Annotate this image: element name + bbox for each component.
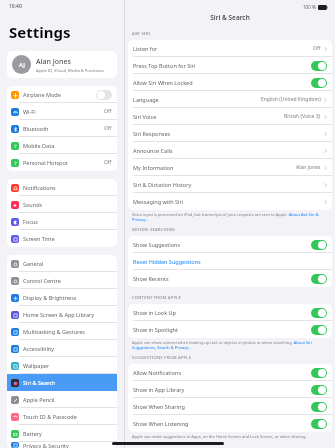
button[interactable]: Show in Spotlight xyxy=(128,321,332,338)
button[interactable]: On xyxy=(311,402,327,412)
button[interactable]: Wi-Fi xyxy=(7,103,117,120)
button[interactable]: On xyxy=(311,78,327,88)
staticText: Bluetooth xyxy=(23,125,49,132)
staticText: Listen for xyxy=(133,45,158,52)
button[interactable]: Mobile Data xyxy=(7,137,117,154)
button[interactable]: My Information xyxy=(128,159,332,176)
staticText: Off xyxy=(104,108,112,115)
staticText: Siri Responses xyxy=(133,130,171,137)
button[interactable]: Wallpaper xyxy=(7,357,117,374)
staticText: Alan Jones xyxy=(296,164,321,171)
button[interactable]: Press Top Button for Siri xyxy=(128,57,332,74)
staticText: Show When Listening xyxy=(133,420,189,427)
button[interactable]: Show When Sharing xyxy=(128,398,332,415)
staticText: Apple ID, iCloud, Media & Purchases xyxy=(36,68,104,73)
button[interactable]: Airplane Mode xyxy=(7,86,117,103)
staticText: Show Suggestions xyxy=(133,241,181,248)
staticText: AJ xyxy=(19,61,25,69)
staticText: Notifications xyxy=(23,184,56,191)
button[interactable]: Announce Calls xyxy=(128,142,332,159)
button[interactable]: Messaging with Siri xyxy=(128,193,332,210)
button[interactable]: Reset Hidden Suggestions xyxy=(128,253,332,270)
staticText: Sounds xyxy=(23,201,43,208)
button[interactable]: Siri & Search xyxy=(7,374,117,391)
staticText: Settings xyxy=(9,22,71,42)
staticText: 100 % xyxy=(303,4,316,10)
button[interactable]: Sounds xyxy=(7,196,117,213)
button[interactable]: Control Centre xyxy=(7,272,117,289)
staticText: Reset Hidden Suggestions xyxy=(133,258,201,265)
button[interactable]: Display & Brightness xyxy=(7,289,117,306)
staticText: Voice input is processed on iPad, but tr… xyxy=(132,212,328,222)
staticText: Language xyxy=(133,96,159,103)
staticText: Wi-Fi xyxy=(23,108,36,115)
staticText: My Information xyxy=(133,164,174,171)
button[interactable]: Allow Notifications xyxy=(128,364,332,381)
button[interactable]: On xyxy=(311,274,327,284)
button[interactable]: Allow Siri When Locked xyxy=(128,74,332,91)
button[interactable]: Off xyxy=(96,90,112,100)
button[interactable]: Touch ID & Passcode xyxy=(7,408,117,425)
button[interactable]: Siri Voice xyxy=(128,108,332,125)
staticText: Mobile Data xyxy=(23,142,55,149)
staticText: Home Screen & App Library xyxy=(23,311,95,318)
staticText: Show in App Library xyxy=(133,386,185,393)
button[interactable]: On xyxy=(311,419,327,429)
staticText: SUGGESTIONS FROM APPLE xyxy=(132,355,192,361)
button[interactable]: On xyxy=(311,308,327,318)
button[interactable]: Battery xyxy=(7,425,117,442)
button[interactable]: Show When Listening xyxy=(128,415,332,432)
button[interactable]: Multitasking & Gestures xyxy=(7,323,117,340)
staticText: Display & Brightness xyxy=(23,294,77,301)
button[interactable]: Show in App Library xyxy=(128,381,332,398)
staticText: Wallpaper xyxy=(23,362,50,369)
button[interactable]: Language xyxy=(128,91,332,108)
button[interactable]: Listen for xyxy=(128,40,332,57)
button[interactable]: Siri & Dictation History xyxy=(128,176,332,193)
button[interactable]: Privacy & Security xyxy=(7,442,117,448)
staticText: Allow Notifications xyxy=(133,369,182,376)
button[interactable]: Bluetooth xyxy=(7,120,117,137)
staticText: Off xyxy=(104,125,112,132)
staticText: BEFORE SEARCHING xyxy=(132,227,176,233)
staticText: Siri & Search xyxy=(23,379,56,386)
staticText: ASK SIRI xyxy=(132,31,150,37)
staticText: Apple can make suggestions in Apps, on t… xyxy=(132,434,307,439)
button[interactable]: Show in Look Up xyxy=(128,304,332,321)
button[interactable]: Personal Hotspot xyxy=(7,154,117,171)
staticText: Airplane Mode xyxy=(23,91,61,98)
button[interactable]: On xyxy=(311,61,327,71)
staticText: General xyxy=(23,260,44,267)
staticText: Personal Hotspot xyxy=(23,159,68,166)
button[interactable]: On xyxy=(311,325,327,335)
button[interactable]: Show Suggestions xyxy=(128,236,332,253)
staticText: Alan Jones xyxy=(36,57,71,67)
button[interactable]: On xyxy=(311,240,327,250)
button[interactable]: Focus xyxy=(7,213,117,230)
button[interactable]: Siri Responses xyxy=(128,125,332,142)
button[interactable]: On xyxy=(311,385,327,395)
staticText: Privacy & Security xyxy=(23,442,69,448)
staticText: Show in Spotlight xyxy=(133,326,178,333)
staticText: Siri Voice xyxy=(133,113,157,120)
button[interactable]: Show Recents xyxy=(128,270,332,287)
button[interactable]: General xyxy=(7,255,117,272)
button[interactable]: On xyxy=(311,368,327,378)
staticText: Allow Siri When Locked xyxy=(133,79,193,86)
staticText: Multitasking & Gestures xyxy=(23,328,85,335)
staticText: Accessibility xyxy=(23,345,55,352)
button[interactable]: Apple Pencil xyxy=(7,391,117,408)
button[interactable]: AJ xyxy=(7,51,117,78)
button[interactable]: Accessibility xyxy=(7,340,117,357)
staticText: Show Recents xyxy=(133,275,169,282)
staticText: 10:40 xyxy=(9,3,22,10)
button[interactable]: Screen Time xyxy=(7,230,117,247)
staticText: Siri & Search xyxy=(125,13,335,22)
staticText: Announce Calls xyxy=(133,147,173,154)
staticText: CONTENT FROM APPLE xyxy=(132,295,182,301)
button[interactable]: Home Screen & App Library xyxy=(7,306,117,323)
staticText: Off xyxy=(313,45,321,52)
staticText: Apple can show content when looking up t… xyxy=(132,340,328,350)
staticText: Apple Pencil xyxy=(23,396,55,403)
button[interactable]: Notifications xyxy=(7,179,117,196)
